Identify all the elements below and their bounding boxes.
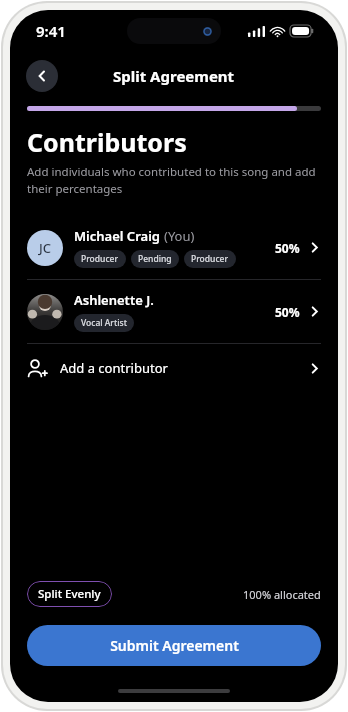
staticText: Producer <box>81 253 119 265</box>
staticText: (You) <box>164 227 195 245</box>
staticText: Add individuals who contributed to this … <box>27 164 321 196</box>
button[interactable]: Back <box>26 60 58 92</box>
staticText: Vocal Artist <box>81 317 127 329</box>
staticText: Michael Craig <box>74 227 164 245</box>
button[interactable]: Add a contributor <box>10 344 338 392</box>
staticText: 50% <box>275 304 300 320</box>
staticText: Contributors <box>27 125 187 159</box>
staticText: Split Agreement <box>113 66 235 86</box>
staticText: 9:41 <box>36 21 66 41</box>
button[interactable]: Ashlenette J. <box>10 280 338 343</box>
staticText: Submit Agreement <box>110 636 239 655</box>
staticText: Add a contributor <box>60 359 308 377</box>
staticText: Split Evenly <box>38 586 101 602</box>
staticText: 50% <box>275 240 300 256</box>
button[interactable]: Submit Agreement <box>27 625 321 666</box>
staticText: Pending <box>138 253 172 265</box>
staticText: Ashlenette J. <box>74 291 154 309</box>
button[interactable]: Split Evenly <box>27 581 112 607</box>
staticText: Producer <box>191 253 229 265</box>
button[interactable]: JC <box>10 216 338 279</box>
staticText: 100% allocated <box>243 587 321 602</box>
staticText: JC <box>39 239 52 257</box>
